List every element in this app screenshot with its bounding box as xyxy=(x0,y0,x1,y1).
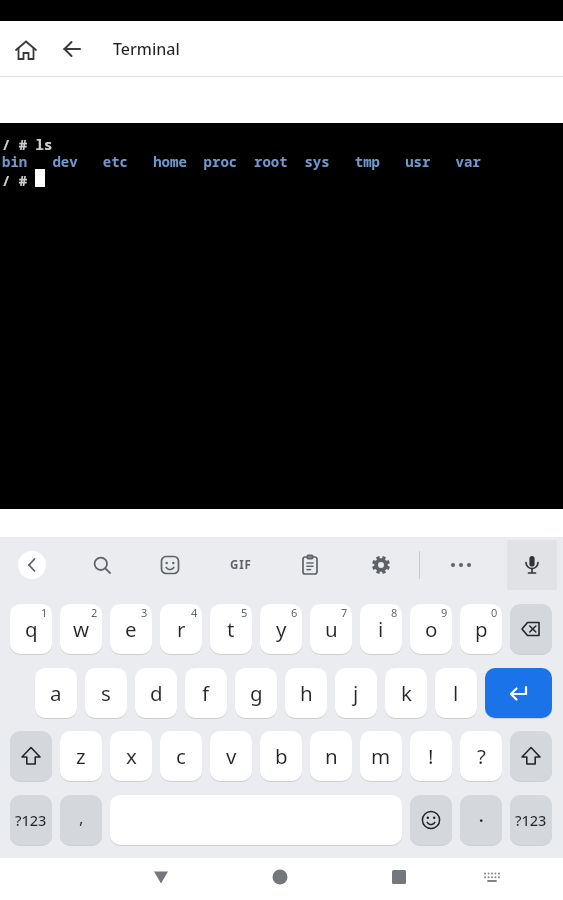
staticText: o xyxy=(425,615,438,643)
staticText: 4 xyxy=(191,605,198,620)
staticText: r xyxy=(177,615,186,643)
button[interactable]: r xyxy=(160,604,202,654)
button[interactable] xyxy=(485,668,552,718)
staticText: / # xyxy=(2,171,28,190)
staticText: ?123 xyxy=(515,810,547,830)
staticText: i xyxy=(378,615,384,643)
staticText: j xyxy=(353,679,359,707)
staticText: ? xyxy=(477,742,486,770)
button[interactable]: · xyxy=(460,795,502,845)
button[interactable] xyxy=(385,863,413,891)
staticText: ! xyxy=(428,742,434,770)
staticText: GIF xyxy=(230,557,252,573)
button[interactable]: s xyxy=(85,668,127,718)
staticText: 6 xyxy=(291,605,298,620)
button[interactable]: q xyxy=(10,604,52,654)
button[interactable]: e xyxy=(110,604,152,654)
staticText: c xyxy=(176,742,186,770)
staticText: 7 xyxy=(341,605,348,620)
button[interactable] xyxy=(298,553,322,577)
button[interactable] xyxy=(60,37,84,61)
staticText: n xyxy=(325,742,338,770)
button[interactable]: h xyxy=(285,668,327,718)
button[interactable] xyxy=(147,863,175,891)
button[interactable] xyxy=(480,866,504,890)
button[interactable]: u xyxy=(310,604,352,654)
button[interactable]: k xyxy=(385,668,427,718)
button[interactable] xyxy=(369,553,393,577)
button[interactable]: w xyxy=(60,604,102,654)
button[interactable]: x xyxy=(110,731,152,781)
button[interactable]: b xyxy=(260,731,302,781)
staticText: , xyxy=(79,806,84,829)
button[interactable]: z xyxy=(60,731,102,781)
staticText: / # ls xyxy=(2,135,53,154)
button[interactable]: a xyxy=(35,668,77,718)
button[interactable] xyxy=(520,553,544,577)
button[interactable]: o xyxy=(410,604,452,654)
staticText: m xyxy=(371,742,391,770)
button[interactable]: g xyxy=(235,668,277,718)
button[interactable] xyxy=(410,795,452,845)
button[interactable] xyxy=(449,553,473,577)
button[interactable] xyxy=(510,604,552,654)
button[interactable] xyxy=(10,731,52,781)
button[interactable]: y xyxy=(260,604,302,654)
staticText: p xyxy=(475,615,488,643)
button[interactable]: j xyxy=(335,668,377,718)
staticText: ?123 xyxy=(15,810,47,830)
staticText: · xyxy=(479,809,484,831)
staticText: s xyxy=(101,679,111,707)
staticText: u xyxy=(325,615,338,643)
staticText: a xyxy=(50,679,62,707)
staticText: 3 xyxy=(141,605,148,620)
button[interactable]: m xyxy=(360,731,402,781)
button[interactable] xyxy=(510,731,552,781)
staticText: g xyxy=(250,679,263,707)
staticText: v xyxy=(226,742,237,770)
button[interactable] xyxy=(18,551,46,579)
button[interactable]: ! xyxy=(410,731,452,781)
staticText: l xyxy=(453,679,459,707)
button[interactable] xyxy=(13,37,39,63)
button[interactable]: , xyxy=(60,795,102,845)
staticText: e xyxy=(125,615,137,643)
button[interactable]: ? xyxy=(460,731,502,781)
staticText: 2 xyxy=(91,605,98,620)
staticText: t xyxy=(227,615,235,643)
staticText: bin dev etc home proc root sys tmp usr v… xyxy=(2,152,481,171)
staticText: 0 xyxy=(491,605,498,620)
button[interactable]: d xyxy=(135,668,177,718)
button[interactable]: v xyxy=(210,731,252,781)
staticText: b xyxy=(275,742,288,770)
staticText: w xyxy=(73,615,90,643)
staticText: f xyxy=(202,679,210,707)
button[interactable]: ?123 xyxy=(10,795,52,845)
button[interactable]: i xyxy=(360,604,402,654)
staticText: d xyxy=(150,679,163,707)
staticText: x xyxy=(126,742,137,770)
staticText: q xyxy=(25,615,38,643)
staticText: h xyxy=(300,679,313,707)
staticText: 5 xyxy=(241,605,248,620)
button[interactable]: f xyxy=(185,668,227,718)
button[interactable]: ?123 xyxy=(510,795,552,845)
staticText: k xyxy=(401,679,412,707)
button[interactable]: t xyxy=(210,604,252,654)
button[interactable]: p xyxy=(460,604,502,654)
staticText: 1 xyxy=(41,605,48,620)
staticText: z xyxy=(76,742,86,770)
button[interactable]: GIF xyxy=(224,556,258,574)
button[interactable] xyxy=(90,553,114,577)
button[interactable]: c xyxy=(160,731,202,781)
staticText: 9 xyxy=(441,605,448,620)
staticText: y xyxy=(276,615,287,643)
staticText: 8 xyxy=(391,605,398,620)
button[interactable] xyxy=(266,863,294,891)
button[interactable]: l xyxy=(435,668,477,718)
button[interactable] xyxy=(158,553,182,577)
button[interactable]: n xyxy=(310,731,352,781)
staticText: Terminal xyxy=(113,38,180,60)
